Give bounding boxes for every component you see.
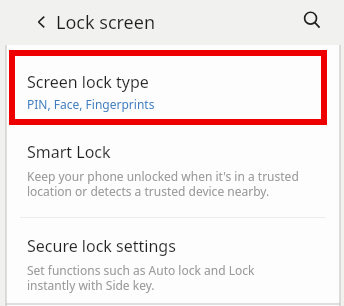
staticText: Keep your phone unlocked when it's in a … xyxy=(27,168,299,199)
button[interactable]: Screen lock type xyxy=(6,45,340,121)
staticText: Set functions such as Auto lock and Lock… xyxy=(27,262,255,293)
staticText: Lock screen xyxy=(56,10,156,35)
button[interactable]: Secure lock settings xyxy=(6,218,340,306)
staticText: Smart Lock xyxy=(27,141,111,163)
button[interactable]: Back xyxy=(24,4,60,40)
button[interactable]: Smart Lock xyxy=(6,122,340,217)
staticText: Screen lock type xyxy=(27,71,149,93)
staticText: PIN, Face, Fingerprints xyxy=(27,96,155,112)
button[interactable]: Search xyxy=(294,2,330,38)
staticText: Secure lock settings xyxy=(27,235,176,257)
